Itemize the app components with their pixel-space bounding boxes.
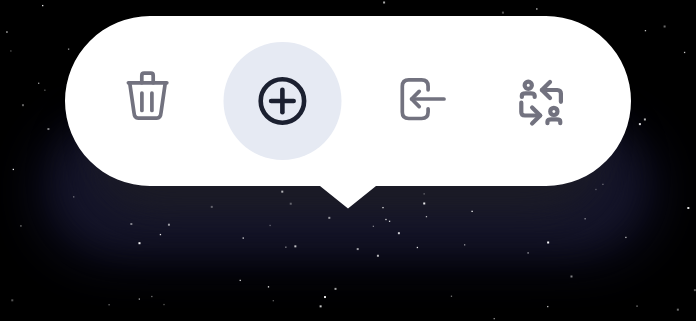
button[interactable]: Move to [365, 16, 485, 186]
button[interactable]: Delete [65, 16, 233, 186]
button[interactable]: Transfer owner [485, 16, 631, 186]
button[interactable]: Add [223, 42, 341, 160]
